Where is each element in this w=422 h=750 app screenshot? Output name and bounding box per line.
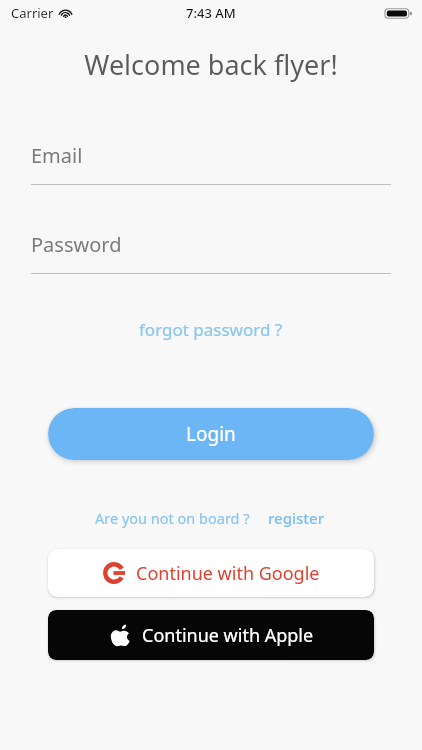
staticText: Carrier — [11, 4, 54, 22]
staticText: Password — [31, 231, 122, 258]
staticText: Email — [31, 142, 83, 169]
button[interactable]: Login — [48, 408, 374, 460]
staticText: register — [268, 508, 324, 528]
button[interactable]: forgot password ? — [131, 314, 291, 345]
staticText: Continue with Google — [136, 561, 320, 586]
button[interactable]: Google logo — [48, 549, 374, 597]
other: Google logo — [103, 562, 125, 584]
staticText: Welcome back flyer! — [84, 46, 338, 83]
staticText: Continue with Apple — [142, 623, 314, 648]
staticText: 7:43 AM — [186, 4, 236, 22]
button[interactable]: register — [264, 505, 328, 531]
button[interactable]: Email — [31, 142, 391, 185]
other: Apple logo — [109, 624, 132, 647]
staticText: forgot password ? — [139, 318, 283, 341]
staticText: Login — [186, 421, 236, 447]
button[interactable]: Password — [31, 231, 391, 274]
button[interactable]: Apple logo — [48, 610, 374, 660]
staticText: Are you not on board ? — [95, 508, 250, 528]
